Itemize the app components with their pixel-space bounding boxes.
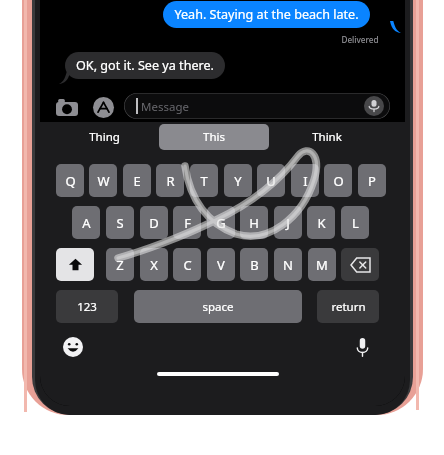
button[interactable]: T	[190, 164, 218, 197]
staticText: 123	[77, 299, 97, 315]
staticText: A	[82, 214, 91, 232]
button[interactable]: D	[140, 206, 168, 239]
button[interactable]: E	[123, 164, 151, 197]
staticText: Z	[116, 256, 124, 274]
staticText: return	[331, 299, 366, 315]
button[interactable]: K	[307, 206, 335, 239]
staticText: I	[303, 172, 308, 190]
staticText: C	[183, 256, 192, 274]
button[interactable]: L	[341, 206, 369, 239]
staticText: Message	[141, 99, 189, 115]
button[interactable]: Backspace	[341, 248, 379, 281]
staticText: B	[250, 256, 259, 274]
staticText: space	[202, 299, 234, 315]
button[interactable]: OK, got it. See ya there.	[65, 52, 225, 79]
button[interactable]: U	[257, 164, 285, 197]
button[interactable]: P	[358, 164, 386, 197]
staticText: Q	[65, 172, 76, 190]
staticText: J	[286, 214, 290, 232]
staticText: This	[203, 129, 225, 145]
button[interactable]: Dictation	[349, 334, 375, 360]
button[interactable]: M	[308, 248, 336, 281]
staticText: Delivered	[341, 34, 379, 45]
button[interactable]: Think	[295, 126, 359, 148]
button[interactable]: C	[173, 248, 201, 281]
button[interactable]: H	[240, 206, 268, 239]
staticText: W	[97, 172, 110, 190]
button[interactable]: space	[134, 290, 302, 323]
staticText: T	[200, 172, 208, 190]
button[interactable]: Camera	[54, 94, 80, 120]
button[interactable]: Q	[56, 164, 84, 197]
staticText: Think	[312, 129, 342, 145]
staticText: S	[116, 214, 124, 232]
staticText: U	[266, 172, 276, 190]
button[interactable]: W	[89, 164, 117, 197]
button[interactable]: App Store	[90, 94, 116, 120]
button[interactable]: F	[173, 206, 201, 239]
button[interactable]: Shift	[56, 248, 94, 281]
staticText: V	[217, 256, 225, 274]
button[interactable]: Thing	[72, 126, 136, 148]
button[interactable]: J	[274, 206, 302, 239]
button[interactable]: O	[324, 164, 352, 197]
staticText: N	[283, 256, 293, 274]
button[interactable]: X	[140, 248, 168, 281]
button[interactable]: Y	[224, 164, 252, 197]
staticText: K	[317, 214, 326, 232]
staticText: R	[166, 172, 175, 190]
button[interactable]: return	[317, 290, 379, 323]
staticText: M	[316, 256, 328, 274]
staticText: D	[149, 214, 159, 232]
staticText: Yeah. Staying at the beach late.	[174, 6, 359, 23]
staticText: L	[352, 214, 359, 232]
button[interactable]: 123	[56, 290, 118, 323]
button[interactable]: G	[207, 206, 235, 239]
staticText: OK, got it. See ya there.	[76, 57, 214, 74]
button[interactable]: Dictate	[364, 96, 384, 116]
staticText: Thing	[89, 129, 120, 145]
button[interactable]: Emoji	[60, 334, 86, 360]
staticText: X	[150, 256, 158, 274]
staticText: F	[184, 214, 191, 232]
button[interactable]: This	[159, 124, 269, 150]
button[interactable]: Message	[124, 93, 390, 119]
button[interactable]: R	[156, 164, 184, 197]
staticText: E	[133, 172, 141, 190]
button[interactable]: B	[240, 248, 268, 281]
button[interactable]: N	[274, 248, 302, 281]
button[interactable]: Yeah. Staying at the beach late.	[163, 1, 370, 28]
button[interactable]: S	[106, 206, 134, 239]
button[interactable]: Z	[106, 248, 134, 281]
button[interactable]: A	[72, 206, 100, 239]
staticText: H	[249, 214, 259, 232]
staticText: P	[368, 172, 376, 190]
staticText: Y	[234, 172, 242, 190]
staticText: G	[216, 214, 226, 232]
button[interactable]: V	[207, 248, 235, 281]
button[interactable]: I	[291, 164, 319, 197]
staticText: O	[333, 172, 344, 190]
